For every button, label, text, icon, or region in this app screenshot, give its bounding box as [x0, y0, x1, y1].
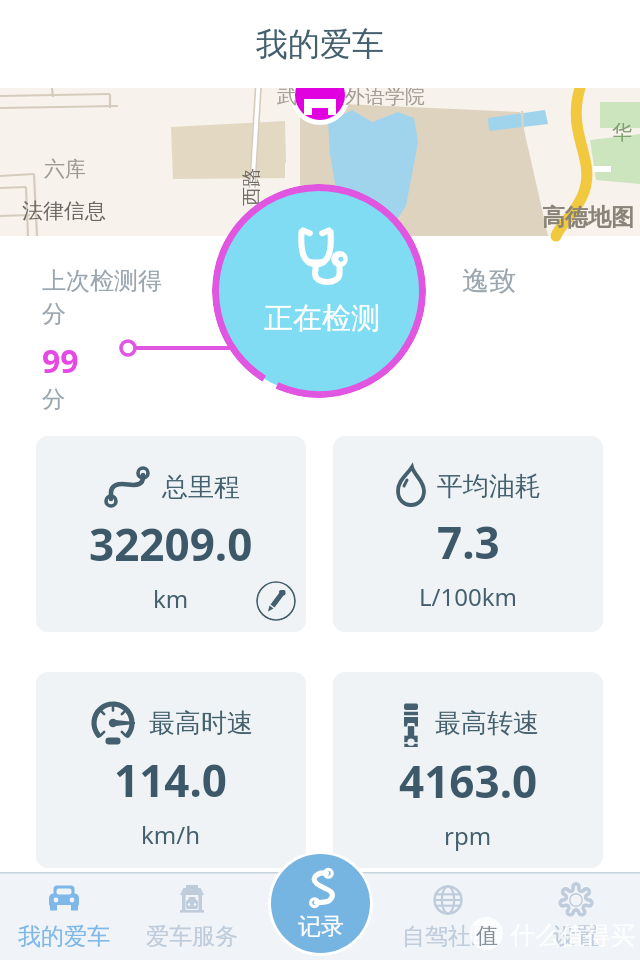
button[interactable]: 平均油耗 — [333, 436, 603, 632]
staticText: 西路 — [240, 168, 264, 206]
button[interactable]: 编辑里程 — [256, 581, 296, 621]
staticText: 六库 — [44, 156, 86, 182]
staticText: 32209.0 — [89, 514, 253, 574]
staticText: 我的爱车 — [18, 922, 110, 951]
staticText: 什么值得买 — [510, 920, 635, 951]
button[interactable]: 爱车服务 — [128, 872, 256, 960]
button[interactable]: 最高时速 — [36, 672, 306, 868]
staticText: 4163.0 — [399, 751, 538, 811]
staticText: km/h — [141, 818, 201, 851]
button[interactable]: 我的爱车 — [0, 872, 128, 960]
staticText: 最高时速 — [149, 707, 253, 740]
staticText: 逸致 — [462, 264, 516, 298]
staticText: rpm — [444, 819, 492, 852]
staticText: 我的爱车 — [256, 24, 384, 64]
staticText: 总里程 — [162, 471, 240, 504]
staticText: 武 — [277, 84, 297, 109]
staticText: 自驾社区 — [402, 922, 494, 951]
button[interactable]: 记录 — [268, 851, 373, 956]
button[interactable]: 自驾社区 — [384, 872, 512, 960]
staticText: 上次检测得分 — [42, 266, 164, 329]
staticText: 高德地图 — [542, 203, 634, 232]
staticText: 外语学院 — [345, 84, 425, 109]
staticText: L/100km — [419, 580, 517, 613]
staticText: 华 — [612, 120, 632, 145]
staticText: 99 — [42, 339, 79, 383]
staticText: 记录 — [298, 912, 344, 941]
staticText: 分 — [42, 385, 65, 414]
button[interactable]: 正在检测 — [212, 184, 426, 398]
button[interactable]: 总里程 — [36, 436, 306, 632]
staticText: 值 — [476, 922, 498, 950]
staticText: 正在检测 — [264, 300, 380, 337]
staticText: 爱车服务 — [146, 922, 238, 951]
staticText: 最高转速 — [435, 707, 539, 740]
staticText: km — [153, 582, 189, 615]
staticText: 法律信息 — [22, 198, 106, 224]
staticText: 7.3 — [437, 512, 500, 572]
button[interactable]: 设置 — [512, 872, 640, 960]
staticText: 114.0 — [114, 750, 228, 810]
staticText: 设置 — [553, 922, 599, 951]
staticText: 平均油耗 — [437, 470, 541, 503]
button[interactable]: 最高转速 — [333, 672, 603, 868]
